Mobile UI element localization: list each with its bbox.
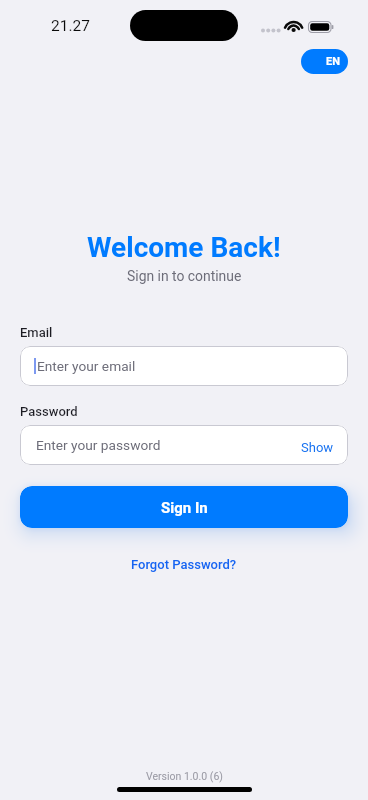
button[interactable]: EN bbox=[301, 49, 348, 74]
button[interactable]: Enter your email bbox=[20, 346, 348, 386]
staticText: EN bbox=[326, 55, 340, 68]
staticText: Show bbox=[301, 440, 334, 455]
staticText: Welcome Back! bbox=[87, 231, 281, 264]
staticText: 21.27 bbox=[51, 17, 90, 35]
staticText: Sign In bbox=[161, 499, 208, 517]
staticText: Sign in to continue bbox=[127, 268, 242, 284]
staticText: Email bbox=[20, 325, 53, 340]
other: Wi-Fi bbox=[284, 18, 304, 34]
staticText: Forgot Password? bbox=[131, 557, 237, 572]
button[interactable]: Enter your password bbox=[20, 425, 348, 465]
staticText: Version 1.0.0 (6) bbox=[146, 770, 223, 782]
button[interactable]: Forgot Password? bbox=[123, 553, 245, 576]
staticText: Enter your password bbox=[36, 437, 161, 453]
staticText: Password bbox=[20, 404, 78, 419]
button[interactable]: Sign In bbox=[20, 486, 348, 528]
button[interactable]: Show bbox=[285, 425, 348, 465]
staticText: Enter your email bbox=[37, 358, 136, 374]
